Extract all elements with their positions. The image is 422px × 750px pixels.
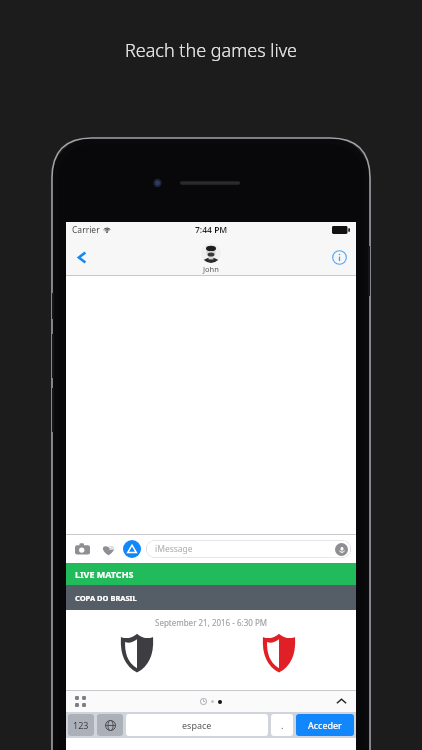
button[interactable]: .: [271, 714, 293, 736]
staticText: John: [203, 264, 219, 274]
button[interactable]: Details: [327, 245, 351, 269]
button[interactable]: Expand: [332, 692, 350, 710]
staticText: Carrier: [72, 224, 100, 236]
other: Dictate: [335, 543, 348, 556]
button[interactable]: espace: [126, 714, 268, 736]
staticText: 123: [73, 719, 89, 731]
staticText: LIVE MATCHS: [75, 568, 134, 580]
button[interactable]: iMessage: [146, 540, 351, 558]
staticText: Reach the games live: [125, 38, 298, 63]
button[interactable]: App drawer: [71, 692, 89, 710]
staticText: iMessage: [155, 543, 193, 555]
button[interactable]: Acceder: [296, 714, 354, 736]
staticText: espace: [182, 719, 212, 731]
staticText: Acceder: [308, 719, 342, 731]
staticText: .: [281, 719, 284, 731]
button[interactable]: Camera: [71, 538, 93, 560]
button[interactable]: Back: [69, 244, 95, 270]
button[interactable]: Apps: [123, 540, 141, 558]
button[interactable]: Language: [97, 714, 123, 736]
button[interactable]: LIVE MATCHS: [66, 563, 356, 585]
button[interactable]: 123: [68, 714, 94, 736]
button[interactable]: Digital Touch: [97, 538, 119, 560]
button[interactable]: John: [201, 243, 221, 274]
button[interactable]: COPA DO BRASIL: [66, 585, 356, 610]
staticText: 7:44 PM: [195, 224, 228, 236]
button[interactable]: September 21, 2016 - 6:30 PM: [66, 610, 356, 690]
staticText: COPA DO BRASIL: [75, 593, 137, 603]
staticText: September 21, 2016 - 6:30 PM: [155, 617, 267, 628]
